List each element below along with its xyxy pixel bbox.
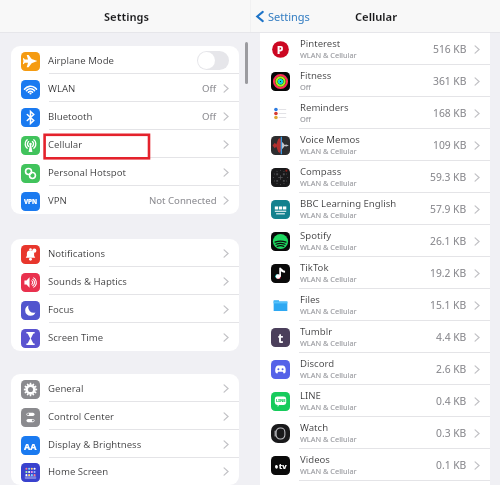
staticText: WLAN & Cellular [300,306,357,316]
button[interactable]: Watch [260,417,490,449]
button[interactable]: Screen Time [11,323,239,351]
button[interactable]: Files [260,289,490,321]
button[interactable]: Fitness [260,65,490,97]
staticText: Off [202,82,217,95]
staticText: TikTok [300,261,329,274]
button[interactable]: LINE [260,385,490,417]
staticText: WLAN & Cellular [300,434,357,444]
button[interactable]: t [260,321,490,353]
button[interactable]: Reminders [260,97,490,129]
staticText: t [278,330,284,346]
staticText: 19.2 KB [430,266,467,280]
staticText: 2.6 KB [436,362,467,376]
button[interactable]: AA [11,430,239,458]
button[interactable]: TikTok [260,257,490,289]
staticText: WLAN & Cellular [300,338,357,348]
staticText: 4.4 KB [436,330,467,344]
staticText: VPN [24,197,38,206]
staticText: Pinterest [300,37,341,50]
staticText: 59.3 KB [430,170,467,184]
button[interactable]: P [260,33,490,65]
staticText: 15.1 KB [430,298,467,312]
staticText: Cellular [48,138,83,151]
staticText: Tumblr [300,325,333,338]
staticText: Screen Time [48,331,104,344]
staticText: LINE [300,389,321,402]
button[interactable]: Voice Memos [260,129,490,161]
staticText: Airplane Mode [48,54,114,67]
staticText: P [277,43,284,57]
button[interactable]: tv [260,449,490,481]
staticText: BBC Learning English [300,197,397,210]
button[interactable]: Airplane Mode toggle [197,51,229,70]
staticText: Bluetooth [48,110,93,123]
staticText: 0.3 KB [436,426,467,440]
staticText: 516 KB [433,42,467,56]
staticText: Home Screen [48,465,109,478]
staticText: General [48,382,84,395]
staticText: Off [300,114,311,124]
staticText: Cellular [355,9,398,24]
button[interactable]: WLAN [11,74,239,102]
staticText: WLAN [48,82,76,95]
button[interactable]: Notifications [11,239,239,267]
staticText: 168 KB [433,106,467,120]
button[interactable]: Control Center [11,402,239,430]
staticText: Display & Brightness [48,438,142,451]
button[interactable]: Personal Hotspot [11,158,239,186]
staticText: 26.1 KB [430,234,467,248]
staticText: Sounds & Haptics [48,275,127,288]
staticText: 0.4 KB [436,394,467,408]
button[interactable]: Home Screen [11,458,239,485]
staticText: Control Center [48,410,115,423]
staticText: tv [279,461,287,471]
staticText: 361 KB [433,74,467,88]
staticText: WLAN & Cellular [300,402,357,412]
staticText: AA [24,440,37,452]
button[interactable]: Bluetooth [11,102,239,130]
button[interactable]: Sounds & Haptics [11,267,239,295]
staticText: WLAN & Cellular [300,274,357,284]
staticText: 109 KB [433,138,467,152]
button[interactable]: Spotify [260,225,490,257]
staticText: Videos [300,453,330,466]
staticText: Watch [300,421,329,434]
staticText: WLAN & Cellular [300,210,357,220]
staticText: LINE [276,398,286,404]
staticText: Notifications [48,247,106,260]
button[interactable]: General [11,374,239,402]
staticText: WLAN & Cellular [300,146,357,156]
staticText: Fitness [300,69,332,82]
staticText: Voice Memos [300,133,360,146]
staticText: WLAN & Cellular [300,370,357,380]
staticText: Not Connected [149,194,217,207]
button[interactable]: BBC Learning English [260,193,490,225]
staticText: 57.9 KB [430,202,467,216]
staticText: Personal Hotspot [48,166,126,179]
staticText: Reminders [300,101,349,114]
button[interactable]: Settings [255,5,311,28]
button[interactable]: Discord [260,353,490,385]
staticText: WLAN & Cellular [300,466,357,476]
button[interactable]: Cellular [11,130,239,158]
staticText: WLAN & Cellular [300,242,357,252]
staticText: Discord [300,357,335,370]
staticText: VPN [48,194,67,207]
staticText: Off [300,82,311,92]
staticText: 0.1 KB [436,458,467,472]
button[interactable]: Airplane Mode [11,46,239,74]
staticText: WLAN & Cellular [300,178,357,188]
button[interactable]: Compass [260,161,490,193]
staticText: Settings [268,9,310,24]
button[interactable]: VPN [11,186,239,214]
staticText: WLAN & Cellular [300,50,357,60]
button[interactable]: Focus [11,295,239,323]
staticText: Compass [300,165,342,178]
staticText: Off [202,110,217,123]
staticText: Settings [104,9,150,24]
staticText: Focus [48,303,74,316]
staticText: Spotify [300,229,332,242]
staticText: Files [300,293,320,306]
